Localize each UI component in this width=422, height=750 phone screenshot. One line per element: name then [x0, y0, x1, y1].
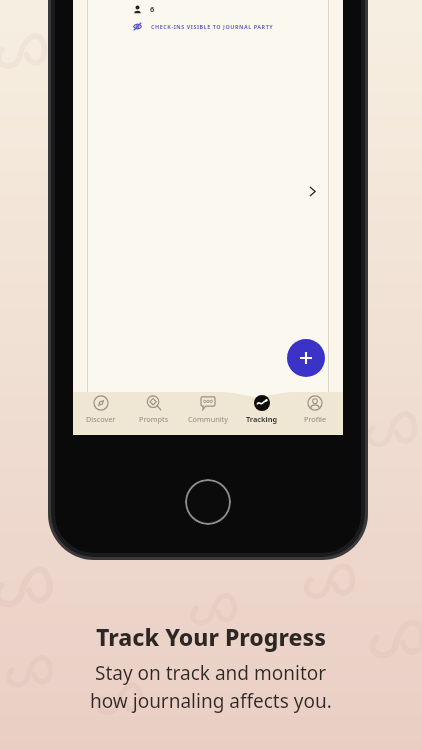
staticText: Track Your Progress — [96, 621, 326, 652]
button[interactable]: Discover — [75, 394, 127, 435]
button[interactable]: Community — [182, 394, 234, 435]
button[interactable]: Prompts — [128, 394, 180, 435]
staticText: Community — [188, 414, 228, 424]
staticText: Discover — [86, 414, 116, 424]
staticText: Tracking — [246, 414, 278, 424]
button[interactable]: Profile — [289, 394, 341, 435]
button[interactable]: Mood Tracker — [87, 0, 329, 435]
staticText: Stay on track and monitor — [95, 660, 327, 686]
button[interactable]: Add tracker — [287, 339, 325, 377]
staticText: how journaling affects you. — [90, 688, 332, 714]
staticText: 6 — [150, 4, 155, 14]
staticText: Prompts — [139, 414, 169, 424]
staticText: CHECK-INS VISIBLE TO JOURNAL PARTY — [151, 23, 274, 30]
staticText: Profile — [304, 414, 327, 424]
button[interactable]: Tracking — [236, 394, 288, 435]
